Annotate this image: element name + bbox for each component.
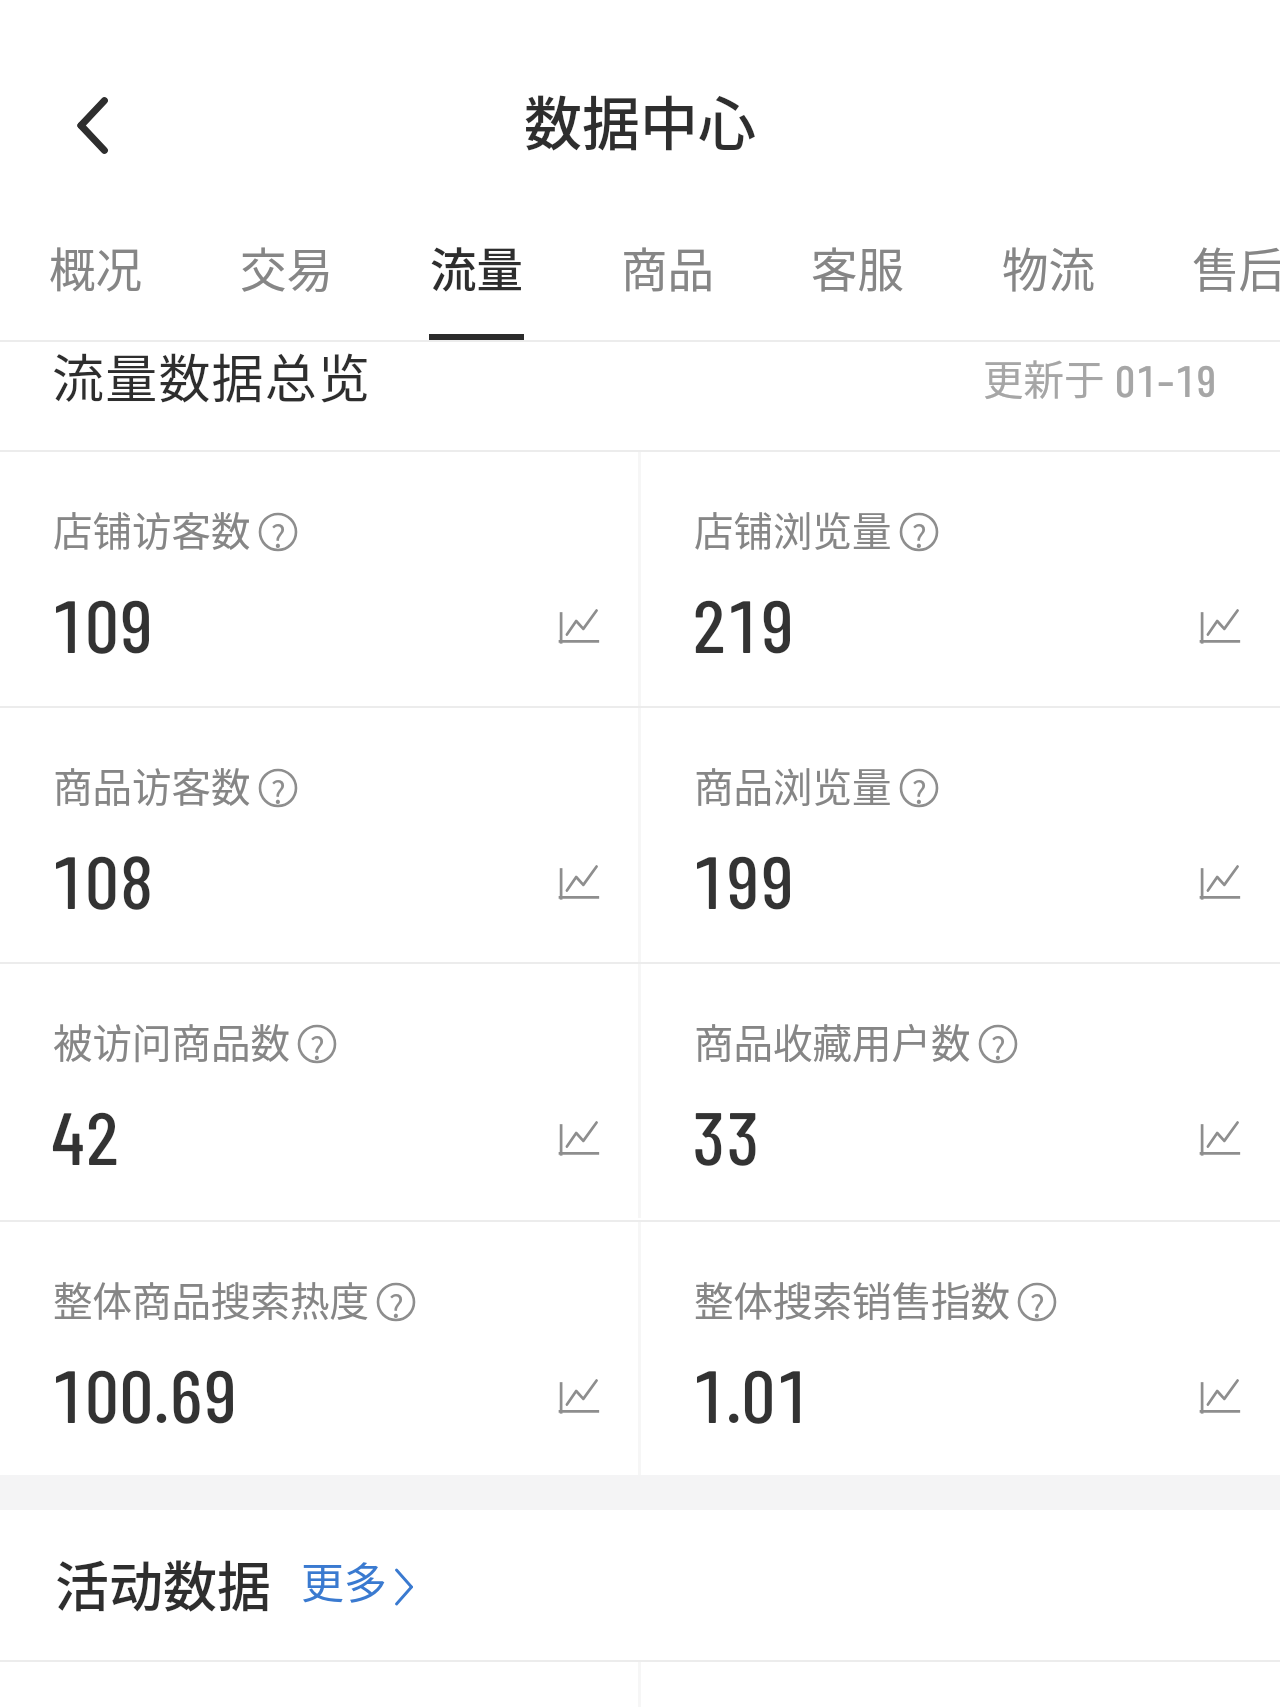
staticText: 100.69	[51, 1349, 239, 1438]
button[interactable]: 售后	[1156, 217, 1280, 342]
button[interactable]: Help	[298, 1025, 336, 1063]
staticText: 流量	[430, 233, 523, 300]
button[interactable]: 商品浏览量	[641, 708, 1280, 962]
button[interactable]: 流量	[394, 217, 558, 342]
button[interactable]: 交易	[204, 217, 368, 342]
staticText: 108	[51, 835, 154, 924]
button[interactable]: 整体商品搜索热度	[0, 1222, 639, 1476]
staticText: ?	[1030, 1282, 1045, 1320]
staticText: 更多	[301, 1549, 387, 1609]
staticText: 店铺访客数	[53, 500, 251, 557]
staticText: 流量数据总览	[52, 338, 372, 413]
button[interactable]: View trend chart	[559, 1116, 601, 1158]
button[interactable]: Help	[900, 769, 938, 807]
staticText: 商品访客数	[53, 756, 251, 813]
staticText: 109	[51, 579, 154, 668]
staticText: ?	[310, 1024, 325, 1062]
staticText: 概况	[49, 233, 142, 300]
staticText: 店铺浏览量	[694, 500, 892, 557]
staticText: 42	[51, 1091, 120, 1180]
button[interactable]: 概况	[13, 217, 177, 342]
button[interactable]: View trend chart	[1200, 604, 1242, 646]
staticText: 219	[692, 579, 795, 668]
staticText: ?	[912, 768, 927, 806]
staticText: 交易	[240, 233, 333, 300]
button[interactable]: View trend chart	[559, 1374, 601, 1416]
button[interactable]: 更多	[301, 1549, 427, 1609]
button[interactable]: 商品	[585, 217, 749, 342]
staticText: 1.01	[692, 1349, 811, 1438]
button[interactable]: 店铺访客数	[0, 452, 639, 706]
button[interactable]: Help	[1018, 1283, 1056, 1321]
button[interactable]: 客服	[775, 217, 939, 342]
button[interactable]: 店铺浏览量	[641, 452, 1280, 706]
staticText: 商品浏览量	[694, 756, 892, 813]
staticText: 被访问商品数	[53, 1012, 290, 1069]
button[interactable]: 物流	[966, 217, 1130, 342]
button[interactable]: Help	[259, 769, 297, 807]
button[interactable]: View trend chart	[1200, 860, 1242, 902]
staticText: ?	[271, 512, 286, 550]
staticText: 物流	[1002, 233, 1095, 300]
staticText: 商品	[621, 233, 714, 300]
staticText: 数据中心	[524, 78, 757, 162]
button[interactable]: View trend chart	[1200, 1374, 1242, 1416]
button[interactable]: 被访问商品数	[0, 964, 639, 1218]
staticText: ?	[271, 768, 286, 806]
staticText: 活动数据	[55, 1544, 271, 1622]
staticText: 整体搜索销售指数	[694, 1270, 1010, 1327]
staticText: ?	[991, 1024, 1006, 1062]
button[interactable]: Help	[900, 513, 938, 551]
button[interactable]: View trend chart	[559, 604, 601, 646]
staticText: 客服	[811, 233, 904, 300]
button[interactable]: 整体搜索销售指数	[641, 1222, 1280, 1476]
staticText: 更新于	[983, 348, 1105, 407]
button[interactable]: Help	[259, 513, 297, 551]
staticText: ?	[912, 512, 927, 550]
staticText: 商品收藏用户数	[694, 1012, 971, 1069]
staticText: 01–19	[1105, 353, 1218, 406]
button[interactable]: 商品收藏用户数	[641, 964, 1280, 1218]
button[interactable]: Help	[979, 1025, 1017, 1063]
staticText: 33	[692, 1091, 761, 1180]
staticText: ?	[389, 1282, 404, 1320]
button[interactable]: View trend chart	[1200, 1116, 1242, 1158]
button[interactable]: 商品访客数	[0, 708, 639, 962]
staticText: 售后	[1192, 233, 1280, 300]
button[interactable]: Help	[377, 1283, 415, 1321]
staticText: 整体商品搜索热度	[53, 1270, 369, 1327]
button[interactable]: Back	[40, 73, 145, 178]
staticText: 199	[692, 835, 795, 924]
button[interactable]: View trend chart	[559, 860, 601, 902]
